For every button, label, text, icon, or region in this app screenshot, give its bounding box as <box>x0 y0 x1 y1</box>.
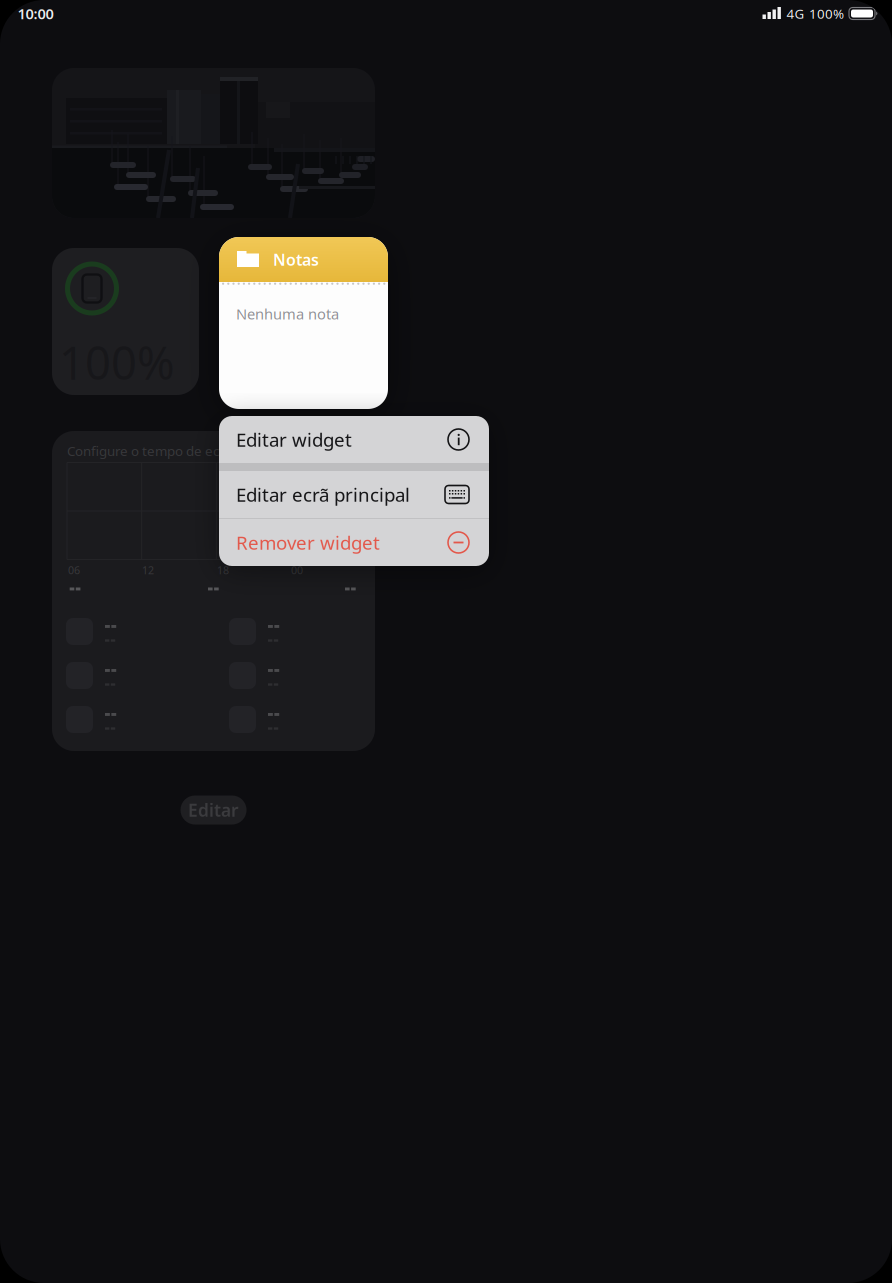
button[interactable]: Editar widget <box>219 416 489 463</box>
button[interactable]: Editar <box>180 795 246 824</box>
staticText: Editar widget <box>236 427 352 452</box>
staticText: 10:00 <box>17 4 53 23</box>
staticText: Remover widget <box>236 530 380 555</box>
staticText: 06 <box>68 563 80 577</box>
button[interactable]: Remover widget <box>219 519 489 566</box>
staticText: Configure o tempo de ecrã no iPad <box>67 442 279 460</box>
button[interactable]: Screen Time widget <box>52 431 375 751</box>
staticText: 4G <box>786 5 804 22</box>
staticText: Notas <box>273 249 319 270</box>
staticText: 18 <box>217 563 229 577</box>
button[interactable]: Battery widget <box>52 248 199 395</box>
staticText: Editar <box>188 798 239 821</box>
staticText: 100% <box>809 5 844 22</box>
button[interactable]: Notes widget <box>219 237 388 409</box>
staticText: 12 <box>142 563 154 577</box>
button[interactable]: Editar ecrã principal <box>219 471 489 518</box>
button[interactable]: Photo widget <box>52 68 375 218</box>
staticText: Editar ecrã principal <box>236 482 410 507</box>
staticText: 00 <box>291 563 303 577</box>
staticText: Nenhuma nota <box>236 304 339 323</box>
